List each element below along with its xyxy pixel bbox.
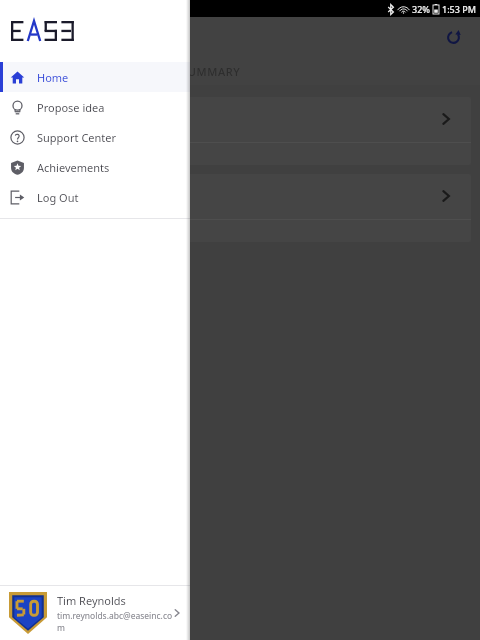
button[interactable]: Refresh (440, 24, 466, 50)
staticText: Log Out (37, 190, 79, 205)
staticText: Propose idea (37, 100, 105, 115)
staticText: Tim Reynolds (57, 593, 126, 608)
button[interactable]: HQ (9, 174, 471, 242)
button[interactable]: Achievements (0, 152, 190, 182)
staticText: tim.reynolds.abc@easeinc.com (57, 610, 173, 634)
staticText: Achievements (37, 160, 110, 175)
staticText: 1:53 PM (442, 3, 476, 15)
button[interactable]: Support Center (0, 122, 190, 152)
staticText: 32% (412, 3, 430, 15)
staticText: Home (37, 70, 69, 85)
button[interactable]: Tim Reynolds (0, 586, 190, 640)
button[interactable]: Home (0, 62, 190, 92)
button[interactable]: Log Out (0, 182, 190, 212)
button[interactable] (0, 0, 480, 640)
staticText: Support Center (37, 130, 117, 145)
staticText: MY SUMMARY (160, 64, 241, 79)
button[interactable]: Propose idea (0, 92, 190, 122)
button[interactable]: omia: Equipment/Machine 1 (9, 97, 471, 165)
